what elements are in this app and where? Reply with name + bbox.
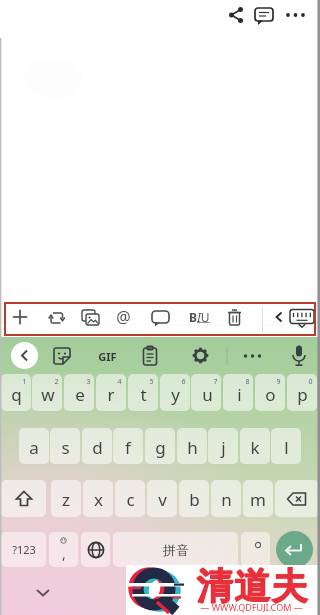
- button[interactable]: [241, 532, 270, 567]
- staticText: BIU: [189, 309, 210, 325]
- button[interactable]: f: [113, 428, 143, 464]
- staticText: ?123: [12, 542, 36, 557]
- button[interactable]: [276, 531, 313, 568]
- button[interactable]: [64, 374, 94, 411]
- button[interactable]: j: [208, 428, 238, 464]
- staticText: b: [189, 488, 200, 511]
- button[interactable]: h: [177, 428, 207, 464]
- button[interactable]: [191, 374, 221, 411]
- staticText: 8: [245, 377, 250, 387]
- staticText: 清道夫: [197, 563, 310, 603]
- staticText: c: [126, 488, 135, 511]
- staticText: 2: [54, 377, 59, 387]
- button[interactable]: [290, 344, 308, 368]
- button[interactable]: [160, 374, 190, 411]
- button[interactable]: [223, 374, 253, 411]
- staticText: f: [125, 436, 131, 459]
- button[interactable]: v: [147, 480, 177, 517]
- staticText: q: [11, 383, 22, 406]
- staticText: r: [107, 383, 115, 406]
- button[interactable]: [190, 345, 211, 366]
- button[interactable]: [255, 374, 285, 411]
- button[interactable]: z: [51, 480, 81, 517]
- button[interactable]: k: [240, 428, 270, 464]
- staticText: y: [171, 383, 180, 406]
- staticText: @: [116, 306, 131, 328]
- button[interactable]: [253, 5, 275, 27]
- staticText: 5: [149, 377, 154, 387]
- button[interactable]: [10, 307, 30, 327]
- button[interactable]: n: [211, 480, 241, 517]
- staticText: e: [75, 383, 85, 406]
- staticText: 7: [213, 377, 218, 387]
- staticText: t: [140, 383, 147, 406]
- button[interactable]: [32, 374, 62, 411]
- button[interactable]: @: [112, 306, 134, 328]
- button[interactable]: x: [83, 480, 113, 517]
- button[interactable]: [243, 348, 263, 364]
- staticText: 3: [86, 377, 91, 387]
- staticText: 拼音: [163, 542, 189, 558]
- staticText: h: [187, 436, 198, 459]
- button[interactable]: g: [145, 428, 175, 464]
- button[interactable]: d: [82, 428, 112, 464]
- staticText: z: [62, 488, 70, 511]
- button[interactable]: ,: [49, 532, 78, 567]
- staticText: d: [92, 436, 103, 459]
- staticText: 清道夫: [196, 563, 309, 603]
- button[interactable]: [33, 586, 53, 602]
- button[interactable]: [47, 308, 67, 328]
- button[interactable]: [227, 6, 245, 24]
- staticText: w: [41, 383, 55, 406]
- staticText: o: [265, 383, 276, 406]
- staticText: j: [221, 436, 226, 459]
- staticText: x: [94, 488, 103, 511]
- button[interactable]: [285, 7, 307, 23]
- staticText: i: [237, 383, 242, 406]
- button[interactable]: [52, 346, 72, 366]
- button[interactable]: [11, 342, 38, 369]
- button[interactable]: s: [50, 428, 80, 464]
- button[interactable]: b: [179, 480, 209, 517]
- staticText: GIF: [98, 349, 117, 364]
- button[interactable]: [275, 480, 319, 517]
- button[interactable]: ?123: [1, 532, 46, 567]
- button[interactable]: [287, 374, 317, 411]
- button[interactable]: BIU: [186, 306, 212, 328]
- button[interactable]: [96, 374, 126, 411]
- staticText: a: [29, 436, 39, 459]
- staticText: u: [202, 383, 213, 406]
- button[interactable]: GIF: [93, 345, 121, 367]
- staticText: m: [250, 488, 266, 511]
- button[interactable]: c: [115, 480, 145, 517]
- button[interactable]: [141, 345, 159, 367]
- staticText: l: [284, 436, 289, 459]
- button[interactable]: [225, 307, 244, 328]
- staticText: k: [250, 436, 260, 459]
- staticText: — WWW.QDFUJI.COM —: [200, 601, 303, 613]
- button[interactable]: m: [243, 480, 273, 517]
- button[interactable]: [80, 307, 101, 328]
- button[interactable]: [273, 310, 285, 324]
- staticText: 1: [22, 377, 27, 387]
- button[interactable]: [128, 374, 158, 411]
- staticText: s: [61, 436, 70, 459]
- staticText: ,: [62, 544, 66, 563]
- staticText: 6: [181, 377, 186, 387]
- staticText: p: [297, 383, 308, 406]
- button[interactable]: 拼音: [113, 532, 238, 567]
- button[interactable]: [1, 374, 31, 411]
- staticText: n: [221, 488, 232, 511]
- staticText: 4: [117, 377, 122, 387]
- button[interactable]: [150, 308, 171, 329]
- staticText: 0: [308, 377, 313, 387]
- staticText: g: [155, 436, 166, 459]
- button[interactable]: [81, 532, 110, 567]
- button[interactable]: a: [19, 428, 49, 464]
- button[interactable]: [1, 480, 46, 517]
- staticText: v: [158, 488, 167, 511]
- button[interactable]: [289, 308, 315, 330]
- button[interactable]: l: [271, 428, 301, 464]
- staticText: 9: [276, 377, 281, 387]
- staticText: 清道夫: [196, 564, 309, 604]
